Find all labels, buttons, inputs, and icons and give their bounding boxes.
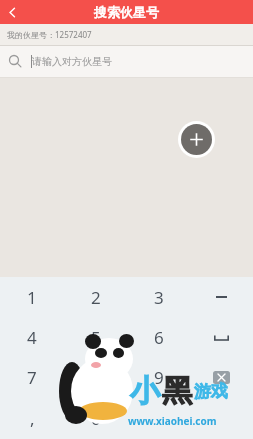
button[interactable]: Back xyxy=(0,0,24,24)
button[interactable]: , xyxy=(0,398,64,439)
staticText: 3 xyxy=(154,286,164,309)
button[interactable]: 请输入对方伙星号 xyxy=(0,46,253,77)
button[interactable]: 6 xyxy=(127,317,190,357)
staticText: 5 xyxy=(91,326,101,349)
button[interactable]: 4 xyxy=(0,317,64,357)
button[interactable]: Add xyxy=(181,124,212,155)
staticText: www.xiaohei.com xyxy=(128,414,217,428)
button[interactable]: 7 xyxy=(0,357,64,398)
button[interactable]: Blank xyxy=(190,398,253,439)
staticText: 7 xyxy=(27,366,37,389)
staticText: 小 xyxy=(130,372,160,410)
staticText: 搜索伙星号 xyxy=(94,4,159,20)
staticText: 8 xyxy=(91,366,101,389)
button[interactable]: 0 xyxy=(64,398,127,439)
staticText: 请输入对方伙星号 xyxy=(32,55,112,68)
button[interactable]: 5 xyxy=(64,317,127,357)
staticText: 我的伙星号：12572407 xyxy=(7,29,92,40)
button[interactable]: 1 xyxy=(0,277,64,317)
button[interactable]: Underscore xyxy=(190,317,253,357)
staticText: , xyxy=(30,407,35,430)
staticText: 2 xyxy=(91,286,101,309)
button[interactable]: 9 xyxy=(127,357,190,398)
staticText: 9 xyxy=(154,366,164,389)
staticText: 1 xyxy=(27,286,37,309)
button[interactable]: Dash xyxy=(190,277,253,317)
button[interactable]: Backspace xyxy=(190,357,253,398)
staticText: 黑 xyxy=(162,372,192,410)
staticText: 游戏 xyxy=(194,381,228,402)
staticText: 0 xyxy=(91,407,101,430)
staticText: 4 xyxy=(27,326,37,349)
button[interactable]: 2 xyxy=(64,277,127,317)
staticText: 6 xyxy=(154,326,164,349)
button[interactable]: 3 xyxy=(127,277,190,317)
button[interactable] xyxy=(127,398,190,439)
button[interactable]: 8 xyxy=(64,357,127,398)
